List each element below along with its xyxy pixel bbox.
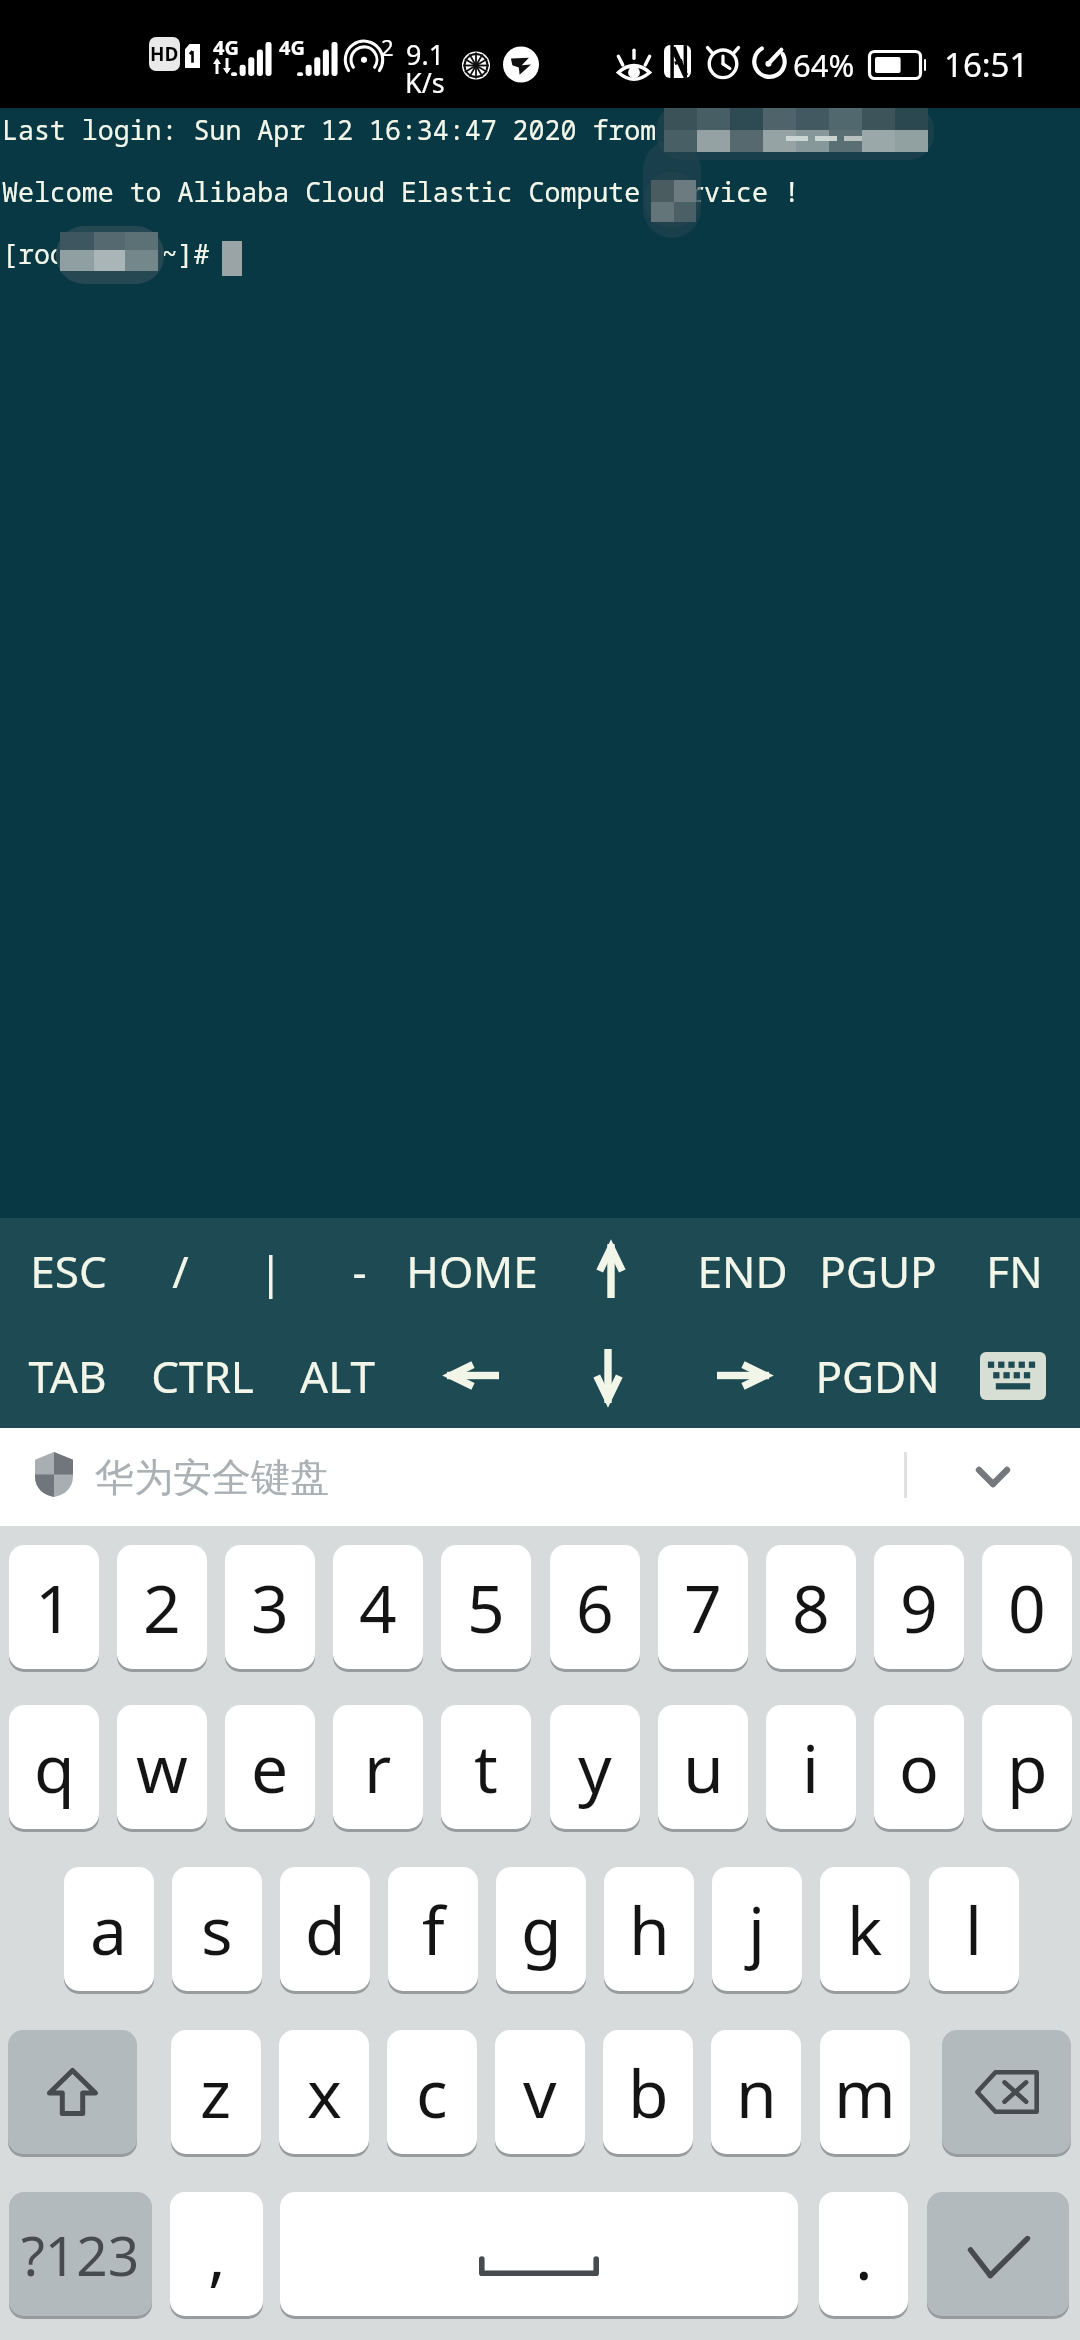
button[interactable]: ALT: [270, 1323, 405, 1428]
staticText: Last login: Sun Apr 12 16:34:47 2020 fro…: [2, 112, 657, 148]
staticText: y: [578, 1722, 612, 1812]
button[interactable]: [540, 1323, 675, 1428]
button[interactable]: PGDN: [810, 1323, 945, 1428]
button[interactable]: w: [117, 1705, 207, 1829]
button[interactable]: k: [820, 1867, 910, 1991]
staticText: w: [136, 1722, 188, 1812]
button[interactable]: j: [712, 1867, 802, 1991]
button[interactable]: t: [441, 1705, 531, 1829]
button[interactable]: b: [603, 2030, 693, 2154]
staticText: l: [965, 1884, 983, 1974]
button[interactable]: Space: [280, 2192, 798, 2316]
staticText: a: [90, 1884, 128, 1974]
staticText: 4G: [279, 34, 305, 61]
staticText: i: [802, 1722, 820, 1812]
staticText: PGUP: [819, 1241, 937, 1301]
staticText: 0: [1008, 1562, 1046, 1652]
button[interactable]: Hide keyboard: [945, 1323, 1080, 1428]
button[interactable]: d: [280, 1867, 370, 1991]
staticText: 8: [792, 1562, 830, 1652]
staticText: ALT: [300, 1346, 375, 1406]
button[interactable]: 0: [982, 1545, 1072, 1669]
button[interactable]: m: [820, 2030, 910, 2154]
button[interactable]: r: [333, 1705, 423, 1829]
button[interactable]: PGUP: [806, 1218, 949, 1323]
staticText: k: [847, 1884, 883, 1974]
button[interactable]: ?123: [9, 2192, 152, 2316]
button[interactable]: n: [711, 2030, 801, 2154]
button[interactable]: FN: [949, 1218, 1080, 1323]
button[interactable]: HOME: [401, 1218, 543, 1323]
staticText: g: [521, 1884, 562, 1974]
button[interactable]: y: [550, 1705, 640, 1829]
staticText: ,: [208, 2209, 226, 2299]
button[interactable]: g: [496, 1867, 586, 1991]
button[interactable]: v: [495, 2030, 585, 2154]
button[interactable]: i: [766, 1705, 856, 1829]
button[interactable]: h: [604, 1867, 694, 1991]
button[interactable]: 1: [9, 1545, 99, 1669]
staticText: 7: [684, 1562, 722, 1652]
staticText: j: [748, 1884, 766, 1974]
button[interactable]: [675, 1323, 810, 1428]
button[interactable]: Shift: [8, 2030, 137, 2154]
button[interactable]: u: [658, 1705, 748, 1829]
staticText: 5: [467, 1562, 505, 1652]
staticText: r: [364, 1722, 392, 1812]
staticText: t: [474, 1722, 498, 1812]
button[interactable]: s: [172, 1867, 262, 1991]
button[interactable]: 3: [225, 1545, 315, 1669]
staticText: HD: [150, 41, 179, 67]
staticText: |: [258, 1241, 283, 1301]
button[interactable]: TAB: [0, 1323, 135, 1428]
button[interactable]: c: [387, 2030, 477, 2154]
staticText: /: [172, 1241, 189, 1301]
button[interactable]: a: [64, 1867, 154, 1991]
button[interactable]: ,: [170, 2192, 263, 2316]
staticText: Welcome to Alibaba Cloud Elastic Compute…: [2, 174, 800, 210]
staticText: 2: [381, 32, 394, 62]
staticText: K/s: [405, 64, 445, 101]
button[interactable]: [405, 1323, 540, 1428]
staticText: 华为安全键盘: [95, 1453, 329, 1502]
button[interactable]: f: [388, 1867, 478, 1991]
button[interactable]: 4: [333, 1545, 423, 1669]
button[interactable]: Enter: [927, 2192, 1069, 2316]
button[interactable]: -: [317, 1218, 401, 1323]
staticText: [root@abc ~]#: [2, 236, 226, 272]
staticText: h: [629, 1884, 670, 1974]
button[interactable]: o: [874, 1705, 964, 1829]
staticText: m: [834, 2047, 896, 2137]
button[interactable]: /: [136, 1218, 224, 1323]
staticText: 6: [576, 1562, 614, 1652]
button[interactable]: p: [982, 1705, 1072, 1829]
button[interactable]: 6: [550, 1545, 640, 1669]
button[interactable]: .: [819, 2192, 908, 2316]
button[interactable]: CTRL: [135, 1323, 270, 1428]
button[interactable]: Backspace: [942, 2030, 1071, 2154]
button[interactable]: 7: [658, 1545, 748, 1669]
button[interactable]: e: [225, 1705, 315, 1829]
staticText: z: [200, 2047, 232, 2137]
button[interactable]: END: [678, 1218, 806, 1323]
staticText: TAB: [28, 1346, 107, 1406]
staticText: ?123: [21, 2217, 140, 2292]
button[interactable]: |: [224, 1218, 317, 1323]
button[interactable]: l: [929, 1867, 1019, 1991]
button[interactable]: 2: [117, 1545, 207, 1669]
button[interactable]: 8: [766, 1545, 856, 1669]
staticText: v: [523, 2047, 557, 2137]
button[interactable]: Collapse keyboard: [956, 1441, 1030, 1513]
staticText: 4: [359, 1562, 397, 1652]
button[interactable]: 9: [874, 1545, 964, 1669]
other: Hide keyboard: [980, 1352, 1046, 1400]
staticText: q: [34, 1722, 75, 1812]
button[interactable]: 5: [441, 1545, 531, 1669]
button[interactable]: [543, 1218, 678, 1323]
button[interactable]: q: [9, 1705, 99, 1829]
staticText: b: [628, 2047, 669, 2137]
staticText: 4G: [213, 34, 239, 61]
button[interactable]: x: [279, 2030, 369, 2154]
button[interactable]: ESC: [0, 1218, 136, 1323]
button[interactable]: z: [171, 2030, 261, 2154]
